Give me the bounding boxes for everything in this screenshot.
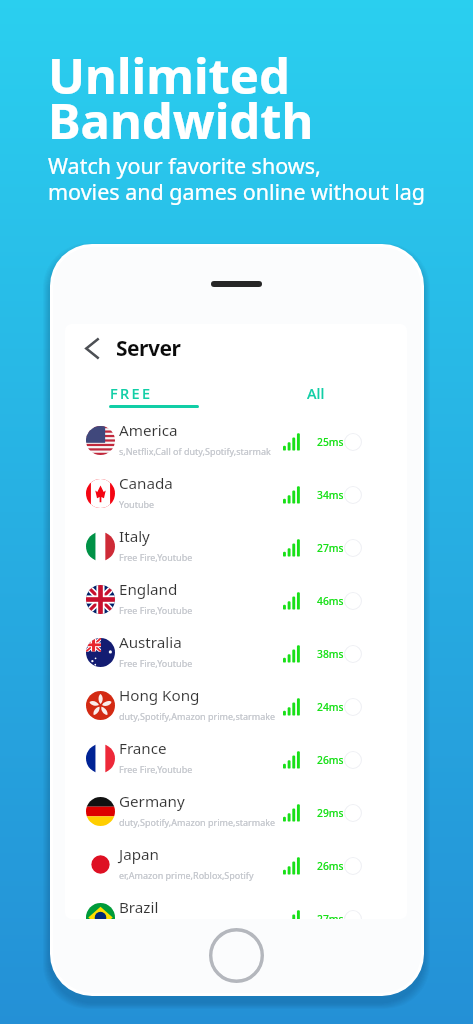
button[interactable]: Select Hong Kong (344, 698, 362, 716)
button[interactable]: FREE (99, 378, 219, 412)
staticText: Server (116, 334, 181, 363)
staticText: 25ms (317, 435, 344, 449)
button[interactable]: Select Germany (344, 804, 362, 822)
button[interactable]: Italy (65, 524, 407, 577)
staticText: Free Fire,Youtube (119, 551, 193, 563)
staticText: 26ms (317, 859, 344, 873)
button[interactable]: Select France (344, 751, 362, 769)
staticText: Unlimited Bandwidth (48, 42, 314, 154)
staticText: Australia (119, 632, 182, 653)
staticText: 27ms (317, 912, 344, 919)
button[interactable]: Back (77, 333, 107, 363)
staticText: Japan (119, 844, 159, 865)
button[interactable]: All (266, 378, 366, 412)
staticText: Germany (119, 791, 185, 812)
staticText: 46ms (317, 594, 344, 608)
staticText: s,Netflix,Call of duty,Spotify,starmak (119, 445, 271, 457)
staticText: All (307, 383, 325, 403)
button[interactable]: Select Canada (344, 486, 362, 504)
staticText: 38ms (317, 647, 344, 661)
staticText: Youtube (119, 498, 155, 510)
button[interactable]: Brazil (65, 895, 407, 919)
staticText: America (119, 420, 178, 441)
staticText: Canada (119, 473, 173, 494)
staticText: Watch your favorite shows, movies and ga… (48, 151, 426, 207)
staticText: Italy (119, 526, 150, 547)
staticText: England (119, 579, 178, 600)
staticText: 34ms (317, 488, 344, 502)
button[interactable]: Germany (65, 789, 407, 842)
staticText: FREE (110, 383, 153, 403)
staticText: Brazil (119, 897, 159, 918)
staticText: France (119, 738, 167, 759)
button[interactable]: Japan (65, 842, 407, 895)
button[interactable]: Australia (65, 630, 407, 683)
button[interactable]: France (65, 736, 407, 789)
button[interactable]: Select Australia (344, 645, 362, 663)
button[interactable]: Select Brazil (344, 910, 362, 919)
staticText: er,Amazon prime,Roblox,Spotify (119, 869, 254, 881)
staticText: 24ms (317, 700, 344, 714)
staticText: 27ms (317, 541, 344, 555)
button[interactable]: Select Italy (344, 539, 362, 557)
staticText: 26ms (317, 753, 344, 767)
button[interactable]: Select America (344, 433, 362, 451)
staticText: 29ms (317, 806, 344, 820)
button[interactable]: Canada (65, 471, 407, 524)
staticText: Hong Kong (119, 685, 200, 706)
staticText: duty,Spotify,Amazon prime,starmake (119, 816, 276, 828)
staticText: Free Fire,Youtube (119, 763, 193, 775)
button[interactable]: America (65, 418, 407, 471)
staticText: duty,Spotify,Amazon prime,starmake (119, 710, 276, 722)
staticText: Free Fire,Youtube (119, 604, 193, 616)
button[interactable]: Hong Kong (65, 683, 407, 736)
staticText: Free Fire,Youtube (119, 657, 193, 669)
button[interactable]: Select England (344, 592, 362, 610)
button[interactable]: England (65, 577, 407, 630)
button[interactable]: Select Japan (344, 857, 362, 875)
